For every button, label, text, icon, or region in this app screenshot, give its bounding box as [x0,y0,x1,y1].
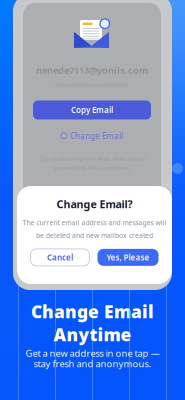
staticText: Change Email [31,300,154,323]
staticText: Copy Email [71,105,113,115]
staticText: Cancel [47,252,73,263]
staticText: automatically after a short time. [53,164,130,171]
button[interactable]: Yes, Please [97,249,158,266]
staticText: nenede7113@yonils.com [36,64,148,76]
staticText: Change Email? [56,197,132,211]
staticText: Anytime [53,323,131,346]
staticText: be deleted and new mailbox created [36,231,153,240]
staticText: The current email address and messages w… [22,218,166,227]
staticText: stay fresh and anonymous. [33,357,151,370]
staticText: Your Temporary Email Address [55,81,129,88]
button[interactable]: Cancel [30,249,89,266]
staticText: Get a new address in one tap — [25,347,159,359]
staticText: This email is temporary. Mails will be d… [39,155,144,162]
button[interactable]: Copy Email [33,100,151,119]
staticText: Change Email [70,130,123,141]
staticText: Yes, Please [106,252,149,263]
button[interactable]: Change Email [61,130,123,141]
